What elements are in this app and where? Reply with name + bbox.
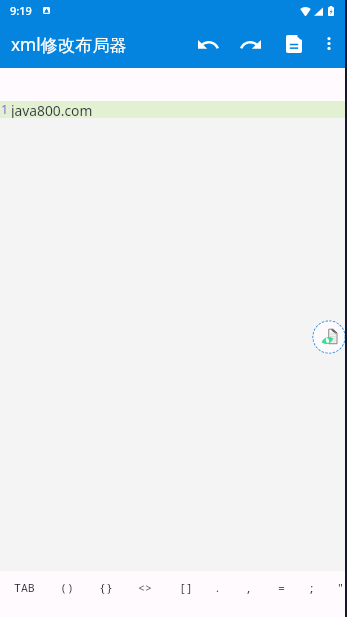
button[interactable]: Redo [229,22,271,68]
button[interactable]: = [264,571,298,604]
staticText: java800.com [11,101,93,118]
staticText: , [245,580,252,596]
button[interactable]: . [200,571,234,604]
button[interactable]: , [231,571,265,604]
staticText: TAB [14,580,35,596]
staticText: " [337,580,344,596]
button[interactable]: " [323,571,347,604]
staticText: [] [179,580,193,596]
staticText: . [214,580,221,596]
button[interactable]: New file [275,22,312,68]
staticText: 1 [1,101,9,118]
button[interactable]: ; [294,571,328,604]
staticText: <> [138,580,152,596]
button[interactable]: More options [312,22,346,68]
staticText: = [278,580,285,596]
button[interactable]: Undo [187,22,229,68]
staticText: xml修改布局器 [11,33,127,56]
staticText: {} [99,580,113,596]
staticText: 9:19 [10,3,32,18]
staticText: ; [308,580,315,596]
button[interactable]: Preview layout [312,320,346,354]
button[interactable]: TAB [7,571,41,604]
button[interactable]: () [50,571,84,604]
button[interactable]: {} [89,571,123,604]
button[interactable]: [] [169,571,203,604]
staticText: () [60,580,74,596]
button[interactable]: <> [128,571,162,604]
